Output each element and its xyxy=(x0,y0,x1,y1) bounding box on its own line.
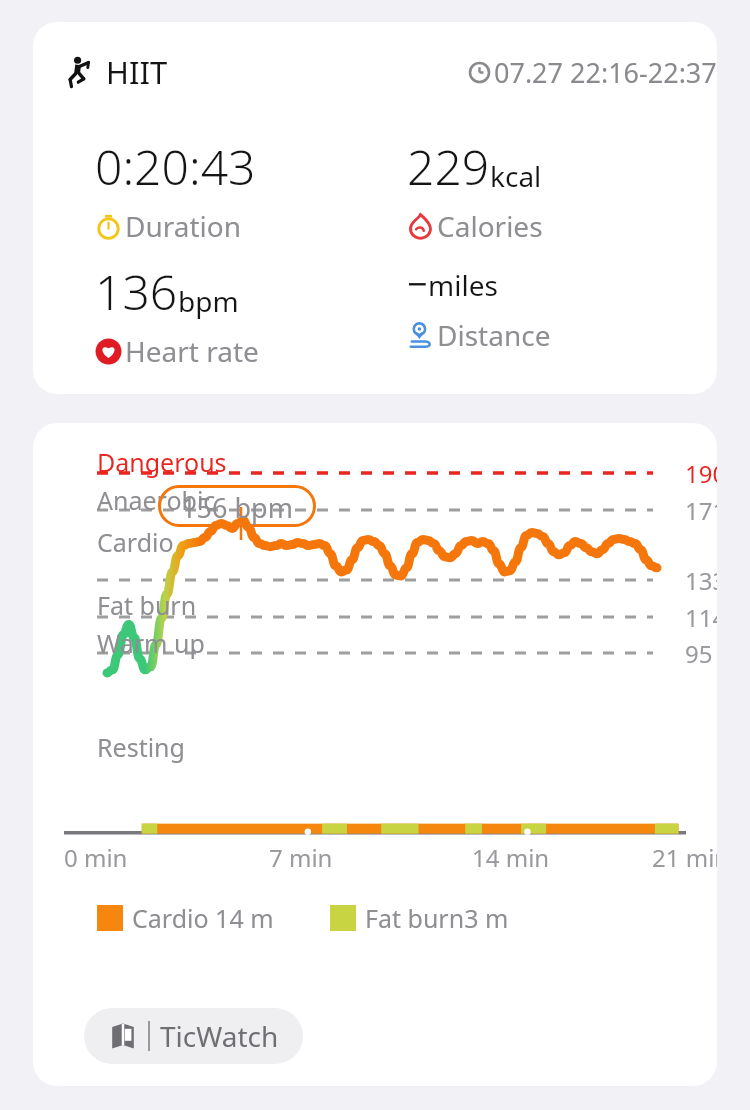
button[interactable]: 136 xyxy=(95,259,395,370)
staticText: 95 xyxy=(685,637,713,670)
button[interactable]: − xyxy=(407,259,707,354)
staticText: 229 xyxy=(407,134,490,199)
staticText: − xyxy=(407,259,428,308)
staticText: 14 min xyxy=(472,841,550,874)
staticText: 0:20:43 xyxy=(95,134,256,199)
staticText: Heart rate xyxy=(125,332,259,370)
staticText: Warm up xyxy=(97,626,205,660)
staticText: Resting xyxy=(97,730,185,764)
staticText: 133 xyxy=(685,564,717,597)
staticText: 171 xyxy=(685,494,717,527)
staticText: 156 bpm xyxy=(158,489,316,526)
staticText: Duration xyxy=(125,207,242,245)
staticText: 21 min xyxy=(652,841,717,874)
button[interactable]: 0:20:43 xyxy=(95,134,395,245)
button[interactable]: TicWatch xyxy=(84,1008,303,1064)
staticText: Cardio xyxy=(97,525,174,559)
staticText: Fat burn xyxy=(97,588,197,622)
staticText: Cardio 14 m xyxy=(132,901,274,935)
staticText: kcal xyxy=(490,157,542,195)
staticText: 0 min xyxy=(64,841,128,874)
staticText: Dangerous xyxy=(97,445,227,479)
staticText: 7 min xyxy=(269,841,333,874)
other: Workout type xyxy=(64,55,98,89)
staticText: Fat burn3 m xyxy=(365,901,509,935)
staticText: Anaerobic xyxy=(97,483,216,517)
staticText: Calories xyxy=(437,207,543,245)
staticText: 07.27 22:16-22:37 xyxy=(494,54,717,91)
staticText: 114 xyxy=(685,601,717,634)
staticText: HIIT xyxy=(106,51,168,93)
staticText: 190 xyxy=(685,457,717,490)
staticText: bpm xyxy=(178,282,239,320)
staticText: miles xyxy=(428,266,498,304)
staticText: TicWatch xyxy=(160,1017,279,1055)
staticText: 136 xyxy=(95,259,178,324)
other: TicWatch xyxy=(108,1021,138,1051)
button[interactable]: 229 xyxy=(407,134,707,245)
staticText: Distance xyxy=(437,316,551,354)
